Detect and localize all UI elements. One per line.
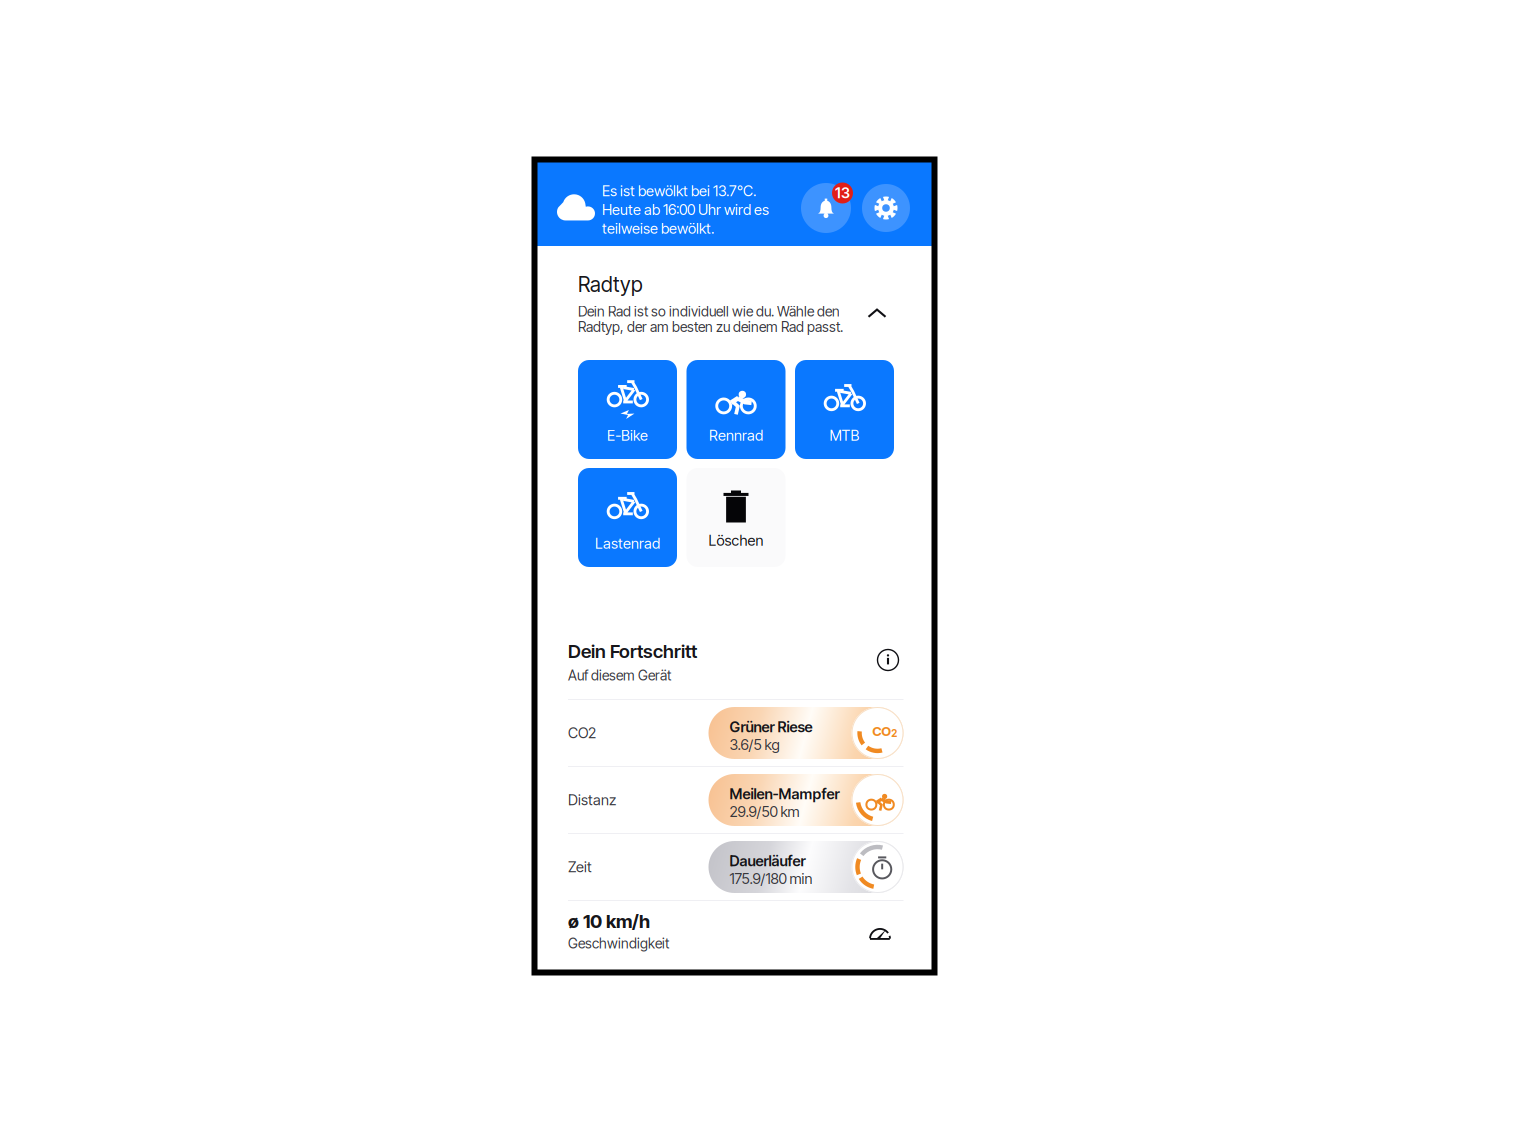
button[interactable]: MTB [795, 360, 894, 459]
button[interactable]: Rennrad [686, 360, 785, 459]
staticText: E-Bike [607, 427, 648, 444]
staticText: 175.9/180 min [729, 870, 812, 887]
staticText: Geschwindigkeit [568, 935, 669, 952]
staticText: MTB [829, 427, 859, 444]
staticText: Dauerläufer [729, 852, 805, 870]
staticText: Heute ab 16:00 Uhr wird es [602, 201, 769, 218]
staticText: 2 [891, 727, 897, 739]
staticText: 3.6/5 kg [729, 736, 779, 753]
button[interactable]: Zeit [568, 834, 903, 900]
button[interactable]: Einklappen [862, 300, 892, 326]
staticText: Es ist bewölkt bei 13.7°C. [602, 182, 756, 200]
button[interactable]: CO2 [568, 700, 903, 766]
staticText: Distanz [568, 791, 616, 809]
staticText: Dein Rad ist so individuell wie du. Wähl… [578, 303, 840, 320]
staticText: ø 10 km/h [568, 910, 650, 933]
staticText: Dein Fortschritt [568, 640, 697, 663]
staticText: Radtyp, der am besten zu deinem Rad pass… [578, 318, 843, 335]
button[interactable]: E-Bike [578, 360, 677, 459]
staticText: Lastenrad [595, 535, 660, 552]
staticText: Rennrad [709, 427, 763, 444]
staticText: Radtyp [578, 272, 643, 297]
button[interactable]: Geschwindigkeit [867, 921, 893, 943]
button[interactable]: Benachrichtigungen [801, 183, 851, 233]
staticText: teilweise bewölkt. [602, 219, 714, 237]
button[interactable]: Löschen [686, 468, 785, 567]
button[interactable]: Einstellungen [862, 184, 910, 232]
button[interactable]: Lastenrad [578, 468, 677, 567]
button[interactable]: Distanz [568, 767, 903, 833]
staticText: Grüner Riese [729, 718, 812, 736]
staticText: Löschen [708, 532, 763, 549]
staticText: CO [872, 723, 891, 739]
staticText: Meilen-Mampfer [729, 785, 839, 803]
staticText: 29.9/50 km [729, 803, 799, 820]
staticText: Auf diesem Gerät [568, 667, 671, 684]
staticText: Zeit [568, 858, 592, 876]
staticText: 13 [835, 184, 850, 202]
staticText: CO2 [568, 724, 596, 742]
button[interactable]: Info [875, 647, 901, 673]
